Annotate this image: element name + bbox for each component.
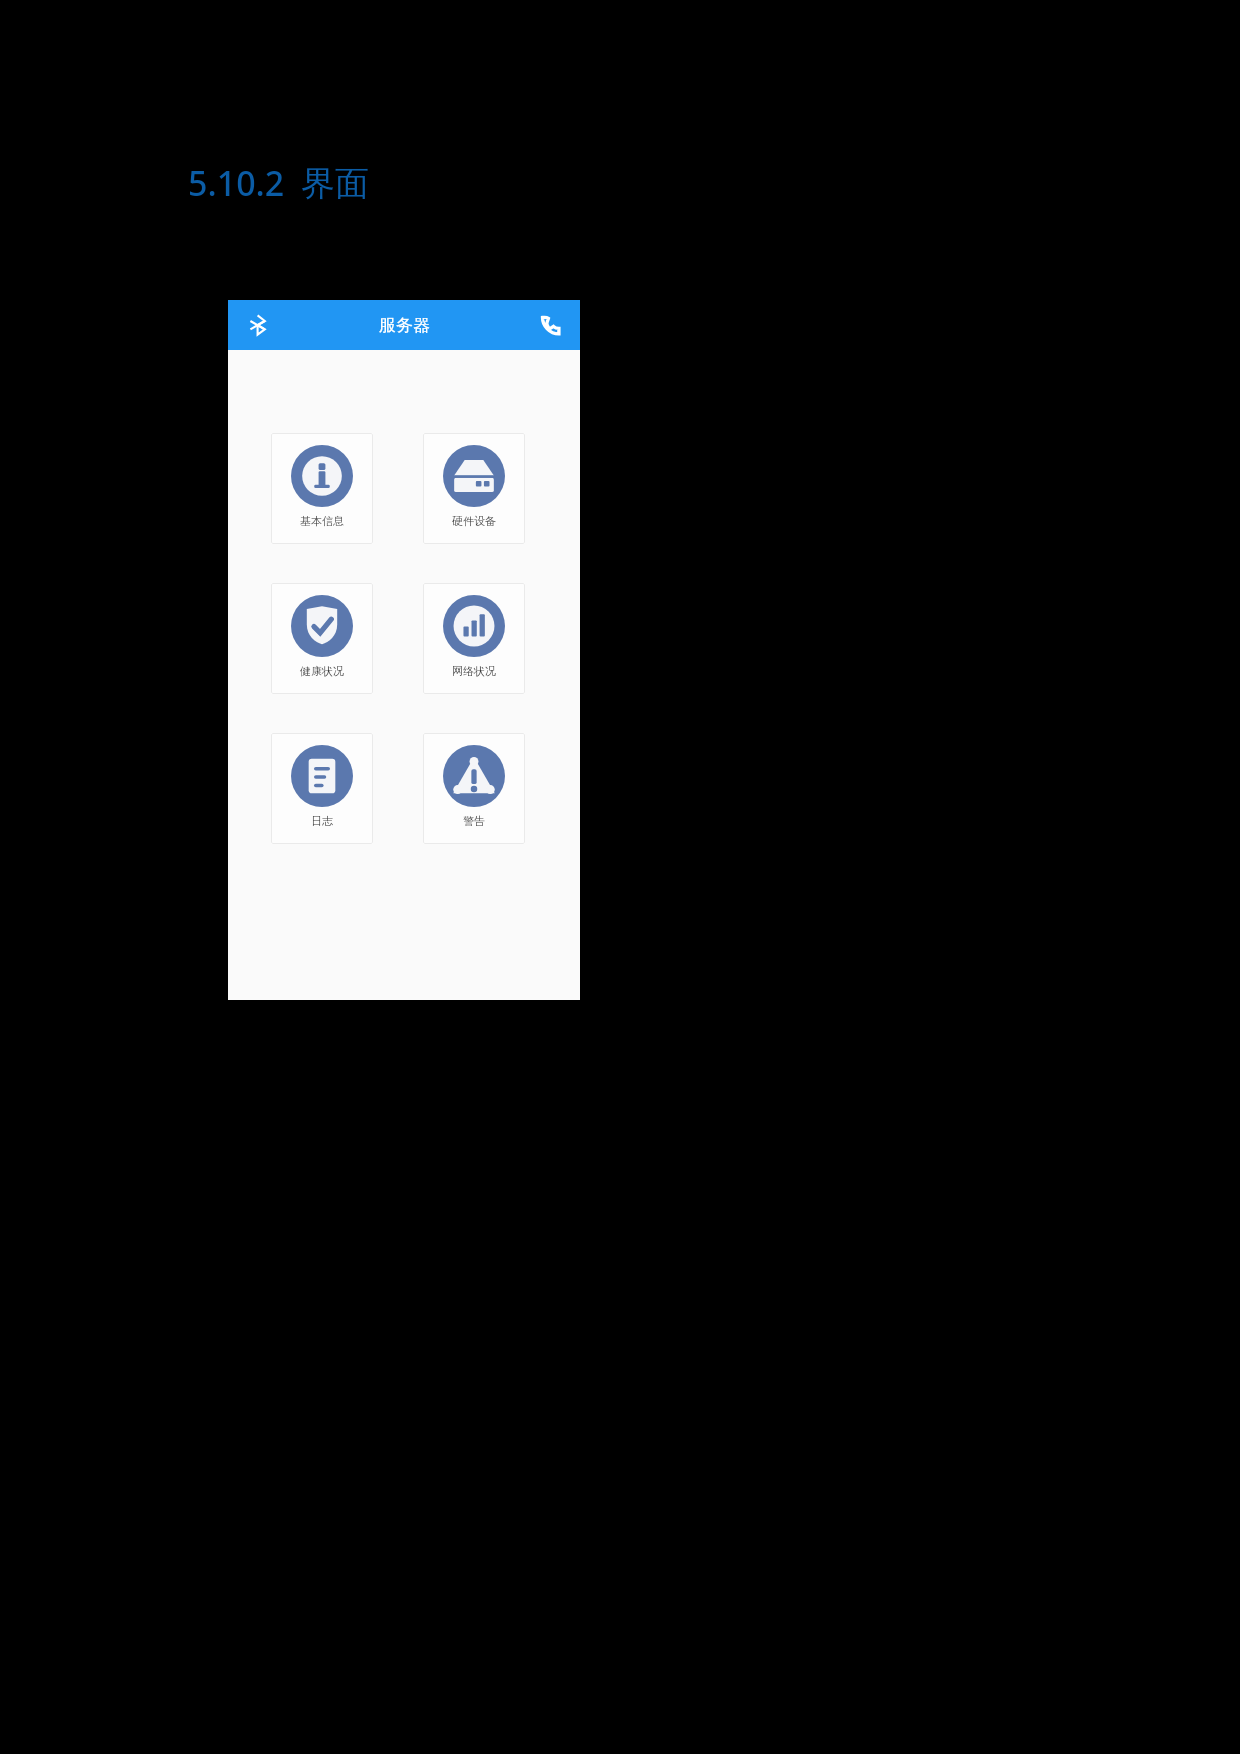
button[interactable]: Bluetooth bbox=[242, 309, 274, 341]
staticText: 健康状况 bbox=[300, 664, 344, 678]
staticText: 基本信息 bbox=[300, 514, 344, 528]
staticText: 服务器 bbox=[379, 315, 430, 336]
button[interactable]: 健康状况 bbox=[271, 583, 373, 694]
button[interactable]: 网络状况 bbox=[423, 583, 525, 694]
button[interactable]: Call bbox=[534, 309, 566, 341]
button[interactable]: 硬件设备 bbox=[423, 433, 525, 544]
staticText: 警告 bbox=[463, 814, 485, 828]
button[interactable]: 警告 bbox=[423, 733, 525, 844]
staticText: 硬件设备 bbox=[452, 514, 496, 528]
staticText: 界面 bbox=[301, 162, 369, 205]
button[interactable]: 日志 bbox=[271, 733, 373, 844]
staticText: 网络状况 bbox=[452, 664, 496, 678]
staticText: 日志 bbox=[311, 814, 333, 828]
staticText: 5.10.2 bbox=[188, 160, 285, 206]
button[interactable]: 基本信息 bbox=[271, 433, 373, 544]
